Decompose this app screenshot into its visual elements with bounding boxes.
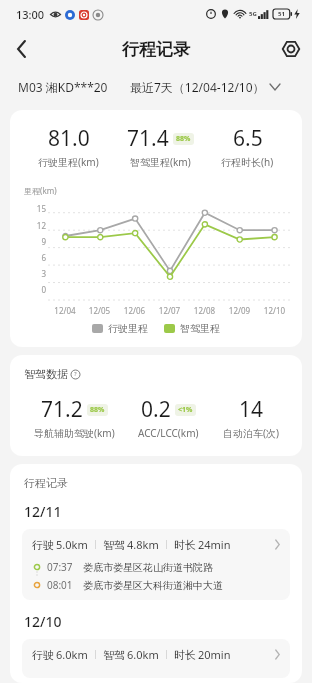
staticText: 行程记录 <box>24 476 68 490</box>
staticText: ? <box>74 370 77 378</box>
staticText: 12/10 <box>24 612 62 631</box>
staticText: 智驾里程(km) <box>130 155 191 169</box>
staticText: 6.0km <box>56 647 88 662</box>
button[interactable]: Settings <box>270 28 312 70</box>
staticText: 时长 <box>174 538 196 552</box>
staticText: 6.0km <box>127 647 159 662</box>
staticText: 0 <box>24 284 46 295</box>
staticText: 12/07 <box>152 305 187 316</box>
staticText: 5.0km <box>56 537 88 552</box>
button[interactable]: Back <box>0 28 42 70</box>
button[interactable]: 最近7天（12/04-12/10） <box>130 79 280 95</box>
staticText: 12/05 <box>82 305 117 316</box>
staticText: 3 <box>24 268 46 279</box>
staticText: 15 <box>24 203 46 214</box>
button[interactable]: M03 湘KD***20 <box>18 79 108 95</box>
button[interactable]: 行驶 <box>22 529 290 600</box>
staticText: 智驾 <box>103 538 125 552</box>
staticText: 12 <box>24 220 46 231</box>
staticText: M03 湘KD***20 <box>18 79 108 95</box>
staticText: 0.2 <box>141 395 171 424</box>
staticText: 行程记录 <box>122 39 190 60</box>
staticText: 13:00 <box>16 7 45 22</box>
staticText: 12/04 <box>48 305 82 316</box>
button[interactable]: Info <box>70 369 80 379</box>
staticText: 20min <box>198 647 231 662</box>
staticText: 12/11 <box>24 502 62 521</box>
staticText: 9 <box>24 236 46 247</box>
staticText: 51 <box>278 10 285 18</box>
staticText: 4.8km <box>127 537 159 552</box>
staticText: 6 <box>24 252 46 263</box>
staticText: 07:37 <box>47 560 73 574</box>
staticText: 81.0 <box>48 124 90 153</box>
staticText: 娄底市娄星区花山街道书院路 <box>83 561 213 574</box>
staticText: ACC/LCC(km) <box>138 426 199 440</box>
staticText: 行驶里程 <box>108 322 148 335</box>
staticText: 12/09 <box>222 305 257 316</box>
staticText: 行驶 <box>32 538 54 552</box>
staticText: 08:01 <box>47 578 73 592</box>
staticText: 时长 <box>174 648 196 662</box>
staticText: 5G <box>249 10 257 18</box>
staticText: 71.2 <box>41 395 83 424</box>
staticText: 自动泊车(次) <box>223 426 279 440</box>
staticText: 智驾数据 <box>24 367 68 381</box>
staticText: 行驶里程(km) <box>38 155 99 169</box>
staticText: 智驾里程 <box>180 322 220 335</box>
staticText: 行驶 <box>32 648 54 662</box>
staticText: 里程(km) <box>24 185 57 196</box>
staticText: 导航辅助驾驶(km) <box>34 426 115 440</box>
staticText: 12/06 <box>117 305 152 316</box>
staticText: 71.4 <box>127 124 169 153</box>
staticText: 14 <box>239 395 264 424</box>
staticText: 6.5 <box>233 124 263 153</box>
staticText: 24min <box>198 537 231 552</box>
staticText: 最近7天（12/04-12/10） <box>130 79 265 95</box>
button[interactable]: 行驶 <box>22 639 290 678</box>
staticText: 12/08 <box>187 305 222 316</box>
staticText: 88% <box>176 134 191 144</box>
staticText: 88% <box>90 405 105 415</box>
staticText: 12/10 <box>257 305 292 316</box>
staticText: 智驾 <box>103 648 125 662</box>
staticText: 行程时长(h) <box>221 155 274 169</box>
staticText: 娄底市娄星区大科街道湘中大道 <box>83 579 223 592</box>
staticText: <1% <box>178 405 193 415</box>
